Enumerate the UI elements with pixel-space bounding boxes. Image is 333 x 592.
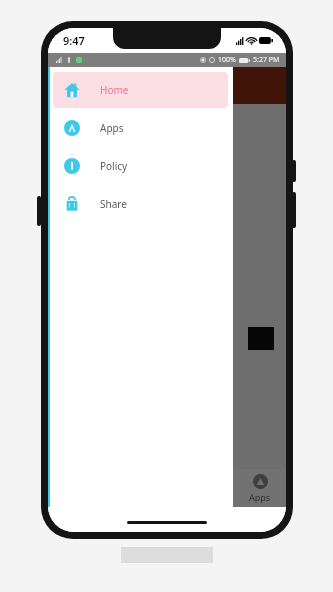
staticText: 100% xyxy=(218,55,236,65)
button[interactable]: Policy xyxy=(53,148,228,184)
button[interactable]: Home xyxy=(53,72,228,108)
staticText: Apps xyxy=(249,491,271,503)
button[interactable]: Share xyxy=(53,186,228,222)
staticText: Policy xyxy=(100,159,128,173)
staticText: 9:47 xyxy=(63,33,85,48)
staticText: Home xyxy=(100,83,129,97)
other: Apps xyxy=(253,474,268,489)
button[interactable]: Apps xyxy=(53,110,228,146)
button[interactable]: Apps xyxy=(234,469,286,507)
staticText: Apps xyxy=(100,121,124,135)
staticText: Share xyxy=(100,197,127,211)
staticText: 5:27 PM xyxy=(253,55,280,65)
